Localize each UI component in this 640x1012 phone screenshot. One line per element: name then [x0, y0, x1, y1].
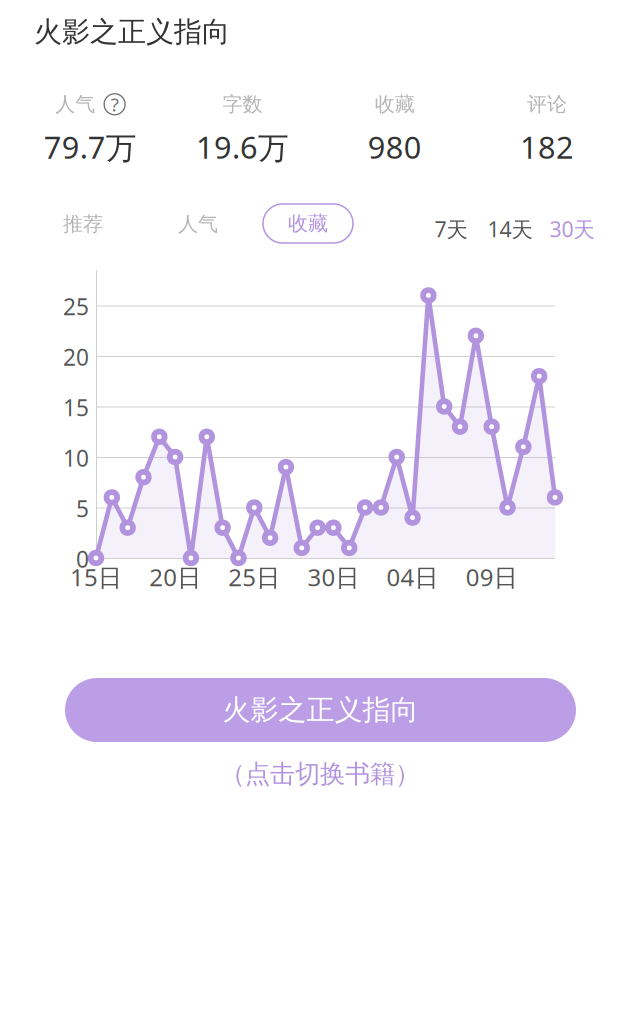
staticText: 25	[63, 291, 89, 321]
button[interactable]: 人气	[177, 206, 219, 242]
staticText: 19.6万	[196, 127, 289, 167]
staticText: 20	[63, 342, 89, 372]
staticText: 收藏	[288, 211, 328, 236]
button[interactable]: 火影之正义指向	[65, 678, 576, 742]
button[interactable]: 14天	[484, 211, 536, 247]
staticText: 980	[368, 127, 422, 167]
staticText: 15日	[70, 561, 122, 593]
staticText: 20日	[149, 561, 201, 593]
staticText: 30日	[307, 561, 359, 593]
staticText: 79.7万	[44, 127, 137, 167]
staticText: 火影之正义指向	[222, 693, 418, 727]
staticText: 25日	[228, 561, 280, 593]
staticText: 字数	[222, 92, 262, 117]
staticText: （点击切换书籍）	[220, 758, 420, 789]
staticText: 5	[76, 493, 89, 523]
staticText: 14天	[487, 215, 532, 243]
staticText: 收藏	[375, 92, 415, 117]
button[interactable]: （点击切换书籍）	[170, 760, 470, 788]
staticText: 火影之正义指向	[34, 15, 230, 49]
staticText: 人气	[178, 212, 218, 236]
button[interactable]: 推荐	[58, 206, 108, 242]
staticText: 182	[520, 127, 574, 167]
staticText: ?	[111, 92, 119, 117]
staticText: 10	[63, 443, 89, 473]
staticText: 推荐	[63, 212, 103, 236]
staticText: 评论	[527, 92, 567, 117]
button[interactable]: 30天	[546, 211, 598, 247]
staticText: 人气	[55, 92, 95, 117]
staticText: 30天	[549, 215, 594, 243]
staticText: 0	[76, 544, 89, 574]
staticText: 09日	[466, 561, 518, 593]
staticText: 04日	[387, 561, 439, 593]
button[interactable]: 收藏	[263, 204, 353, 243]
staticText: 7天	[434, 215, 467, 243]
staticText: 15	[63, 392, 89, 422]
button[interactable]: 7天	[430, 211, 472, 247]
